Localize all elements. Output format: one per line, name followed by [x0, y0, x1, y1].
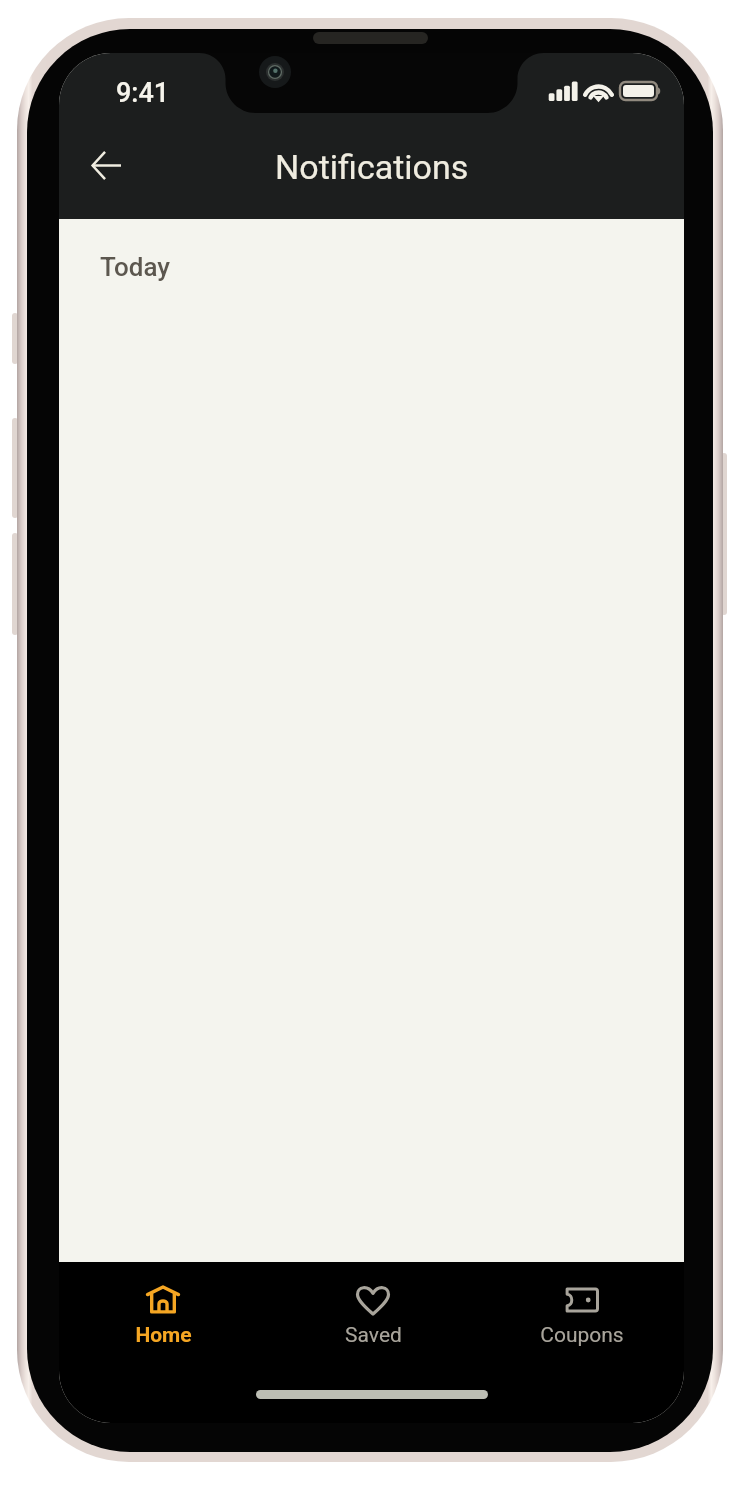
- staticText: Saved: [345, 1323, 402, 1348]
- staticText: 9:41: [116, 77, 170, 109]
- button[interactable]: Coupons: [502, 1268, 662, 1364]
- button[interactable]: Home: [83, 1268, 243, 1364]
- staticText: Coupons: [540, 1323, 624, 1348]
- button[interactable]: Back: [79, 138, 133, 192]
- staticText: Today: [100, 252, 171, 282]
- button[interactable]: Saved: [293, 1268, 453, 1364]
- staticText: Home: [135, 1323, 192, 1348]
- staticText: Notifications: [275, 147, 469, 187]
